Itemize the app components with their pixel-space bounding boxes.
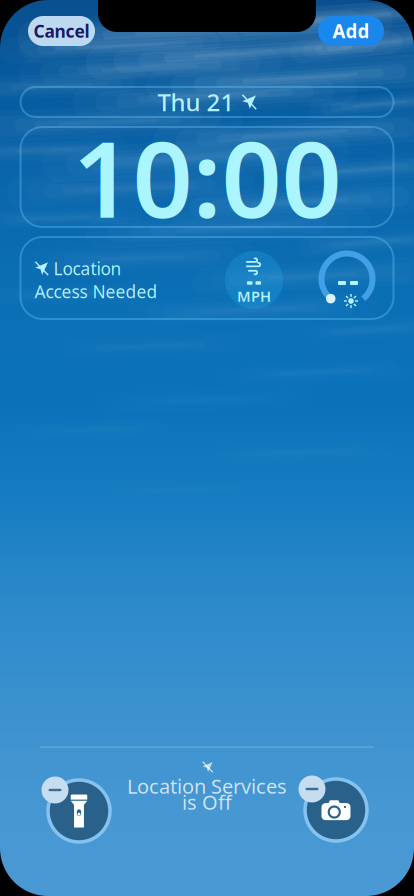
- button[interactable]: Remove Camera: [292, 768, 380, 852]
- staticText: MPH: [237, 286, 271, 306]
- staticText: is Off: [182, 789, 232, 815]
- staticText: Thu 21: [157, 86, 234, 118]
- button[interactable]: Add: [318, 16, 384, 46]
- staticText: Access Needed: [34, 280, 157, 303]
- staticText: 10:00: [72, 107, 341, 247]
- button[interactable]: 10:00: [20, 127, 393, 227]
- button[interactable]: [20, 237, 393, 319]
- staticText: Location: [53, 257, 121, 280]
- button[interactable]: Cancel: [28, 16, 95, 46]
- staticText: Location Services: [127, 773, 287, 799]
- button[interactable]: Remove Flashlight: [35, 769, 123, 853]
- button[interactable]: Thu 21: [20, 87, 393, 117]
- staticText: Cancel: [33, 19, 89, 42]
- staticText: Add: [332, 19, 369, 43]
